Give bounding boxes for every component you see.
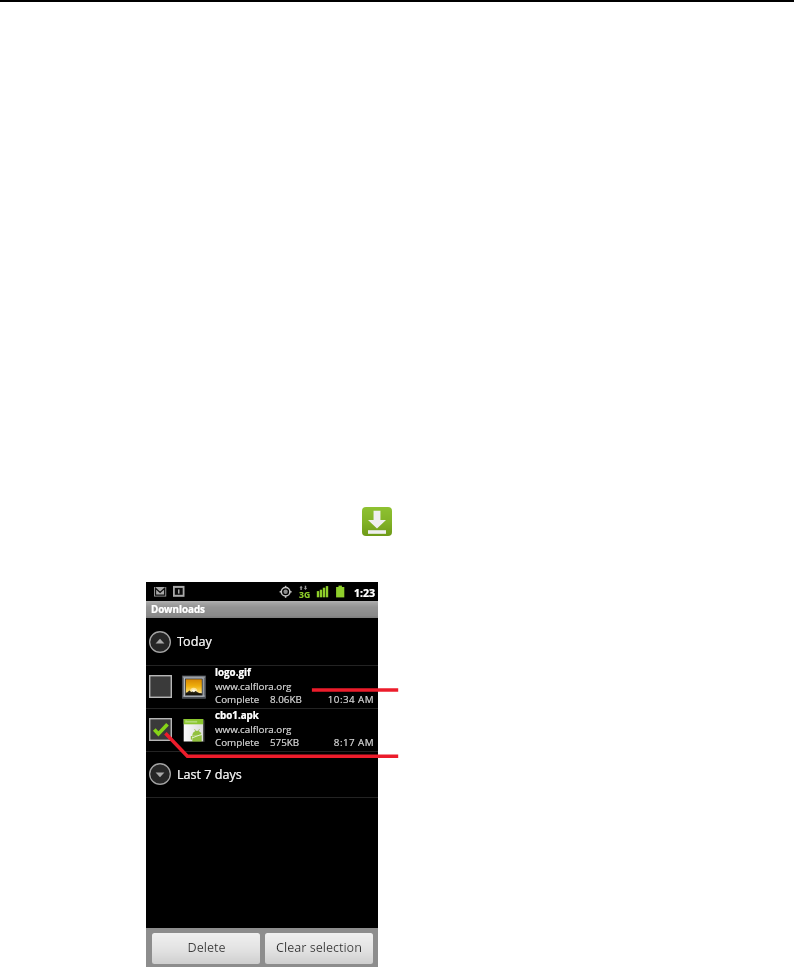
button[interactable]: cbo1.apk xyxy=(146,708,378,751)
staticText: 575KB xyxy=(270,736,300,749)
staticText: Complete xyxy=(215,693,260,706)
staticText: Complete xyxy=(215,736,260,749)
staticText: 8:17 AM xyxy=(146,736,374,749)
button[interactable]: Clear selection xyxy=(265,933,373,964)
staticText: 3G xyxy=(299,589,311,601)
button[interactable]: Download xyxy=(362,507,392,536)
button[interactable]: logo.gif xyxy=(146,665,378,708)
staticText: Downloads xyxy=(151,603,205,616)
staticText: Last 7 days xyxy=(177,766,242,783)
staticText: Delete xyxy=(187,939,226,956)
staticText: logo.gif xyxy=(215,666,251,679)
staticText: Today xyxy=(177,633,212,650)
staticText: Clear selection xyxy=(276,939,362,956)
button[interactable]: Delete xyxy=(152,933,260,964)
staticText: 8.06KB xyxy=(270,693,302,706)
button[interactable]: Today xyxy=(146,618,378,665)
staticText: www.calflora.org xyxy=(215,680,292,693)
staticText: 10:34 AM xyxy=(146,693,374,706)
staticText: www.calflora.org xyxy=(215,723,292,736)
staticText: cbo1.apk xyxy=(215,709,259,722)
button[interactable]: Last 7 days xyxy=(146,751,378,797)
staticText: 1:23 xyxy=(354,586,376,600)
